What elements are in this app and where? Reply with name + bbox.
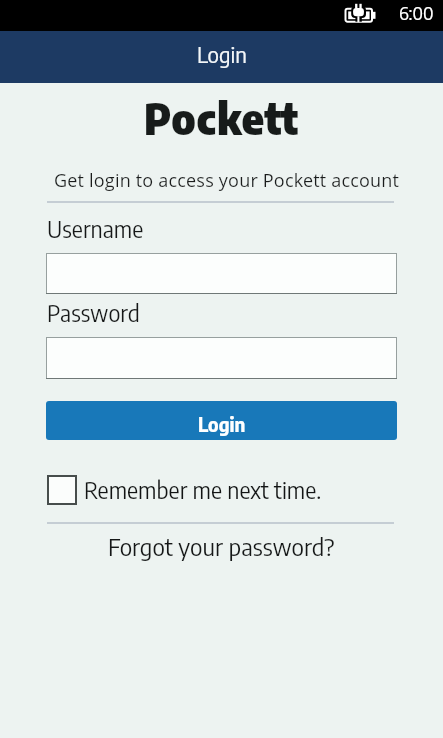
staticText: Pockett — [144, 92, 299, 144]
button[interactable]: Remember me next time. — [47, 470, 337, 510]
button[interactable] — [46, 253, 397, 294]
staticText: Remember me next time. — [84, 475, 322, 504]
button[interactable] — [46, 401, 397, 440]
button[interactable] — [46, 337, 397, 379]
staticText: Username — [47, 214, 144, 243]
staticText: Login — [198, 412, 246, 436]
staticText: Get login to access your Pockett account — [54, 168, 400, 193]
staticText: Password — [47, 298, 140, 327]
button[interactable]: Forgot your password? — [108, 531, 335, 561]
button[interactable] — [0, 31, 443, 83]
staticText: Login — [197, 40, 247, 68]
staticText: 6:00 — [399, 1, 434, 23]
